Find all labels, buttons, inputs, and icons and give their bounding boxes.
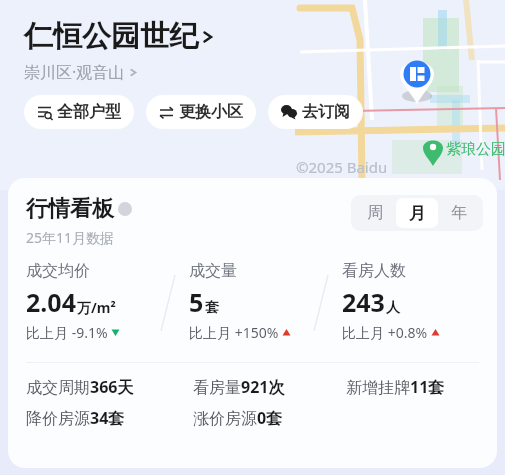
staticText: 去订阅 bbox=[302, 102, 350, 122]
staticText: 紫琅公园 bbox=[446, 140, 505, 159]
button[interactable]: 崇川区·观音山 bbox=[24, 61, 138, 83]
staticText: 套 bbox=[205, 299, 219, 317]
other: 更换小区 bbox=[159, 105, 174, 120]
other: 去订阅 bbox=[281, 104, 297, 120]
staticText: 看房人数 bbox=[342, 261, 406, 281]
staticText: 比上月 -9.1% bbox=[26, 323, 108, 342]
staticText: 全部户型 bbox=[57, 102, 121, 122]
staticText: 行情看板 bbox=[26, 195, 114, 223]
button[interactable]: 看房量921次 bbox=[193, 376, 346, 398]
staticText: 成交均价 bbox=[26, 261, 90, 281]
button[interactable]: 去订阅 bbox=[268, 95, 363, 129]
other: 全部户型 bbox=[37, 105, 52, 120]
staticText: 新增挂牌11套 bbox=[346, 376, 445, 398]
staticText: 成交周期366天 bbox=[26, 376, 134, 398]
staticText: 比上月 +0.8% bbox=[342, 323, 428, 342]
button[interactable]: 月 bbox=[396, 198, 438, 228]
button[interactable]: 周 bbox=[354, 198, 396, 228]
staticText: 更换小区 bbox=[179, 102, 243, 122]
staticText: 降价房源34套 bbox=[26, 407, 125, 429]
staticText: 25年11月数据 bbox=[26, 228, 115, 247]
staticText: 成交量 bbox=[189, 261, 237, 281]
button[interactable]: 看房人数 bbox=[342, 261, 497, 342]
staticText: 243 bbox=[342, 285, 385, 319]
button[interactable]: 全部户型 bbox=[24, 95, 134, 129]
button[interactable]: 新增挂牌11套 bbox=[346, 376, 497, 398]
button[interactable]: 成交均价 bbox=[26, 261, 175, 342]
button[interactable]: 成交量 bbox=[189, 261, 328, 342]
staticText: 涨价房源0套 bbox=[193, 407, 283, 429]
staticText: 人 bbox=[386, 299, 400, 317]
button[interactable]: 行情看板 bbox=[26, 195, 132, 223]
button[interactable]: 仁恒公园世纪 bbox=[24, 18, 215, 55]
staticText: 年 bbox=[451, 203, 467, 223]
button[interactable]: 年 bbox=[438, 198, 480, 228]
staticText: 看房量921次 bbox=[193, 376, 285, 398]
button[interactable]: 更换小区 bbox=[146, 95, 256, 129]
staticText: 5 bbox=[189, 285, 204, 319]
staticText: 比上月 +150% bbox=[189, 323, 279, 342]
staticText: 2.04 bbox=[26, 285, 76, 319]
staticText: 仁恒公园世纪 bbox=[24, 18, 198, 55]
staticText: 崇川区·观音山 bbox=[24, 61, 125, 83]
staticText: 周 bbox=[367, 203, 383, 223]
staticText: 月 bbox=[409, 203, 426, 224]
other: 说明 bbox=[118, 202, 132, 216]
button[interactable]: 降价房源34套 bbox=[26, 407, 193, 429]
staticText: 万/m² bbox=[77, 298, 116, 317]
staticText: ©2025 Baidu bbox=[296, 157, 388, 177]
button[interactable]: 涨价房源0套 bbox=[193, 407, 346, 429]
button[interactable]: 成交周期366天 bbox=[26, 376, 193, 398]
